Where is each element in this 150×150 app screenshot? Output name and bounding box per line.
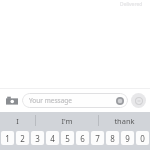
- button[interactable]: I: [0, 112, 35, 129]
- staticText: I'm: [61, 116, 73, 126]
- button[interactable]: 5: [61, 131, 74, 145]
- staticText: Delivered: [120, 1, 143, 8]
- staticText: 0: [140, 133, 145, 144]
- staticText: thank: [114, 116, 135, 126]
- staticText: 2: [20, 133, 25, 144]
- button[interactable]: 9: [121, 131, 134, 145]
- button[interactable]: 3: [31, 131, 44, 145]
- staticText: Your message: [29, 96, 72, 105]
- button[interactable]: Send: [131, 93, 146, 108]
- button[interactable]: 6: [76, 131, 89, 145]
- staticText: 7: [95, 133, 100, 144]
- button[interactable]: 8: [106, 131, 119, 145]
- button[interactable]: 0: [136, 131, 149, 145]
- button[interactable]: 4: [46, 131, 59, 145]
- staticText: 4: [50, 133, 55, 144]
- staticText: 5: [65, 133, 70, 144]
- button[interactable]: I'm: [36, 112, 98, 129]
- staticText: I: [16, 116, 19, 126]
- button[interactable]: 1: [1, 131, 14, 145]
- button[interactable]: Emoji: [116, 97, 124, 105]
- staticText: 8: [110, 133, 115, 144]
- button[interactable]: 2: [16, 131, 29, 145]
- staticText: 9: [125, 133, 130, 144]
- button[interactable]: thank: [99, 112, 150, 129]
- staticText: 1: [5, 133, 10, 144]
- staticText: 6: [80, 133, 85, 144]
- button[interactable]: Your message: [22, 93, 128, 108]
- button[interactable]: Camera: [3, 92, 20, 109]
- button[interactable]: 7: [91, 131, 104, 145]
- staticText: 3: [35, 133, 40, 144]
